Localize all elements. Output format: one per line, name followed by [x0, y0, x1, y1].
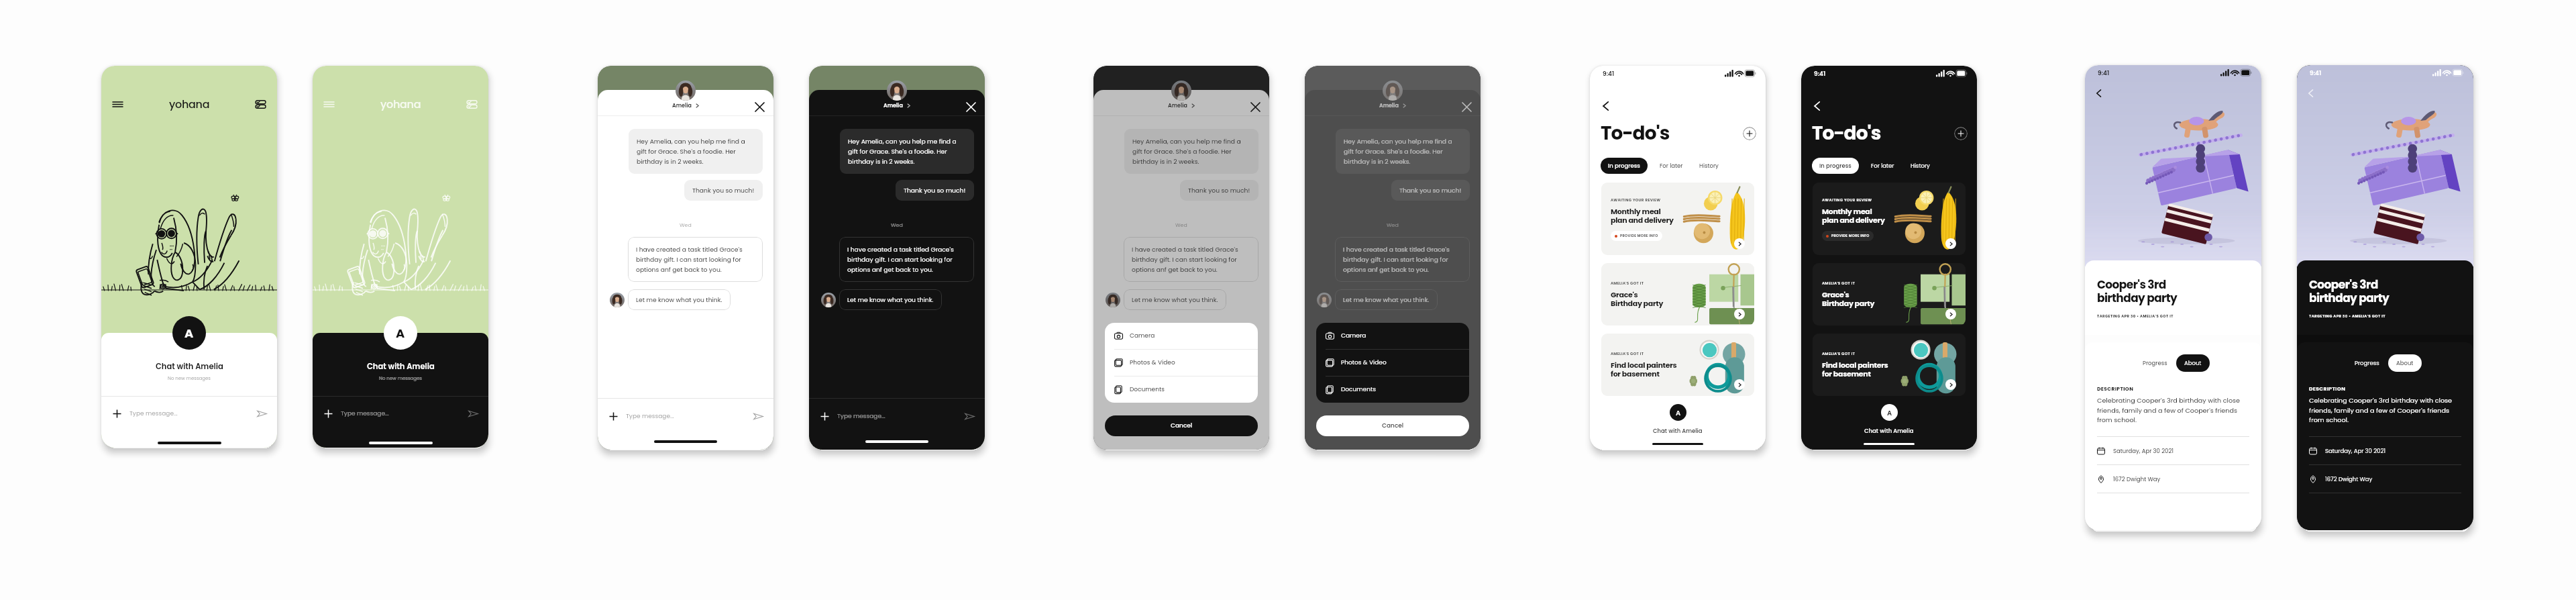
button[interactable]: Progress: [2137, 355, 2173, 371]
staticText: Hey Amelia, can you help me find a gift …: [848, 137, 966, 166]
button[interactable]: Back: [1811, 100, 1823, 112]
button[interactable]: Camera: [1105, 323, 1258, 349]
button[interactable]: History: [1906, 158, 1935, 174]
button[interactable]: AMELIA'S GOT IT: [1601, 334, 1754, 396]
staticText: AMELIA'S GOT IT: [1822, 351, 1856, 356]
button[interactable]: In progress: [1812, 158, 1859, 174]
staticText: History: [1911, 162, 1930, 170]
button[interactable]: Back: [2306, 88, 2316, 99]
staticText: Wed: [680, 221, 692, 229]
staticText: Saturday, Apr 30 2021: [2325, 447, 2386, 455]
staticText: Documents: [1341, 385, 1376, 394]
staticText: History: [1699, 162, 1719, 170]
button[interactable]: About: [2176, 354, 2210, 372]
staticText: Find local painters for basement: [1822, 360, 1888, 379]
button[interactable]: Add to-do: [1743, 127, 1756, 140]
staticText: A: [184, 325, 194, 342]
button[interactable]: AMELIA'S GOT IT: [1813, 263, 1966, 326]
button[interactable]: [887, 81, 907, 101]
button[interactable]: Progress: [2349, 355, 2385, 371]
button[interactable]: AWAITING YOUR REVIEW: [1813, 183, 1966, 255]
button[interactable]: AMELIA'S GOT IT: [1601, 263, 1754, 326]
button[interactable]: Send: [753, 411, 763, 421]
staticText: Find local painters for basement: [1611, 360, 1677, 379]
button[interactable]: Close: [1462, 102, 1472, 112]
staticText: Thank you so much!: [1399, 186, 1462, 195]
staticText: Photos & Video: [1341, 358, 1387, 367]
button[interactable]: Close: [966, 102, 976, 112]
button[interactable]: [1106, 293, 1120, 307]
button[interactable]: Camera: [1316, 323, 1469, 349]
button[interactable]: Back: [1600, 100, 1612, 112]
staticText: 9:41: [2098, 69, 2110, 78]
button[interactable]: Photos & Video: [1105, 350, 1258, 376]
button[interactable]: Add attachment: [323, 409, 333, 419]
button[interactable]: Chat with Amelia: [1590, 412, 1766, 450]
button[interactable]: AMELIA'S GOT IT: [1813, 334, 1966, 396]
button[interactable]: [676, 81, 696, 101]
button[interactable]: Cancel: [1105, 415, 1258, 436]
staticText: Let me know what you think.: [847, 295, 934, 304]
staticText: I have created a task titled Grace's bir…: [1343, 245, 1462, 274]
button[interactable]: A: [1670, 404, 1686, 421]
button[interactable]: Chat with Amelia: [1801, 412, 1977, 450]
staticText: No new messages: [168, 375, 211, 382]
staticText: Celebrating Cooper's 3rd birthday with c…: [2309, 396, 2461, 424]
staticText: 1672 Dwight Way: [2113, 475, 2161, 483]
staticText: Wed: [1175, 221, 1187, 229]
button[interactable]: Tasks: [255, 99, 266, 110]
button[interactable]: In progress: [1601, 158, 1648, 174]
button[interactable]: [1171, 81, 1191, 101]
button[interactable]: Add to-do: [1954, 127, 1968, 140]
button[interactable]: Cancel: [1316, 415, 1469, 436]
button[interactable]: Add attachment: [112, 409, 122, 419]
staticText: Hey Amelia, can you help me find a gift …: [1344, 137, 1462, 166]
button[interactable]: About: [2388, 354, 2422, 372]
button[interactable]: Close: [1250, 102, 1260, 112]
staticText: Thank you so much!: [692, 186, 755, 195]
button[interactable]: Documents: [1316, 377, 1469, 403]
button[interactable]: AWAITING YOUR REVIEW: [1601, 183, 1754, 255]
button[interactable]: Documents: [1105, 377, 1258, 403]
staticText: A: [396, 325, 405, 342]
staticText: AWAITING YOUR REVIEW: [1611, 197, 1661, 203]
button[interactable]: Send: [965, 411, 975, 421]
button[interactable]: Add attachment: [608, 411, 619, 421]
staticText: Cancel: [1171, 421, 1193, 430]
button[interactable]: Tasks: [466, 99, 478, 110]
button[interactable]: Send: [468, 409, 478, 419]
button[interactable]: History: [1695, 158, 1723, 174]
button[interactable]: A: [1881, 404, 1898, 421]
button[interactable]: Photos & Video: [1316, 350, 1469, 376]
staticText: Let me know what you think.: [1343, 295, 1430, 304]
staticText: DESCRIPTION: [2309, 385, 2346, 392]
button[interactable]: For later: [1866, 158, 1899, 174]
staticText: A: [1676, 408, 1681, 417]
staticText: Hey Amelia, can you help me find a gift …: [1132, 137, 1250, 166]
button[interactable]: [610, 293, 625, 307]
staticText: Hey Amelia, can you help me find a gift …: [637, 137, 755, 166]
button[interactable]: [821, 293, 836, 307]
button[interactable]: A: [172, 316, 206, 350]
staticText: Cooper's 3rd birthday party: [2309, 277, 2390, 306]
button[interactable]: Send: [257, 409, 267, 419]
button[interactable]: For later: [1655, 158, 1688, 174]
button[interactable]: Menu: [112, 99, 123, 110]
staticText: DESCRIPTION: [2097, 385, 2134, 392]
button[interactable]: Add attachment: [820, 411, 830, 421]
staticText: Thank you so much!: [904, 186, 966, 195]
button[interactable]: Back: [2094, 88, 2104, 99]
button[interactable]: Menu: [323, 99, 335, 110]
staticText: Amelia: [883, 102, 903, 109]
staticText: Type message...: [341, 409, 389, 418]
staticText: Wed: [1387, 221, 1399, 229]
button[interactable]: [1383, 81, 1403, 101]
staticText: Wed: [891, 221, 903, 229]
button[interactable]: Close: [755, 102, 765, 112]
staticText: I have created a task titled Grace's bir…: [636, 245, 755, 274]
staticText: Progress: [2143, 359, 2167, 367]
button[interactable]: [1317, 293, 1332, 307]
staticText: 9:41: [2310, 69, 2322, 78]
staticText: To-do's: [1601, 120, 1670, 146]
button[interactable]: A: [384, 316, 417, 350]
